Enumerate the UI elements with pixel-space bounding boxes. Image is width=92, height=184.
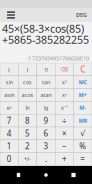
button[interactable]: = xyxy=(74,153,92,165)
button[interactable]: √ xyxy=(74,127,92,140)
staticText: = xyxy=(80,154,85,164)
button[interactable]: 5 xyxy=(18,127,37,140)
staticText: . xyxy=(45,154,47,164)
button[interactable]: − xyxy=(55,140,74,153)
button[interactable]: ) xyxy=(18,63,37,76)
staticText: π xyxy=(44,66,47,73)
button[interactable]: lg xyxy=(37,101,55,114)
staticText: lg xyxy=(44,104,48,111)
button[interactable]: ÷ xyxy=(55,114,74,127)
button[interactable]: C xyxy=(74,63,92,76)
button[interactable]: 1 xyxy=(0,140,18,153)
staticText: ÷ xyxy=(62,115,67,126)
button[interactable]: ( xyxy=(0,63,18,76)
staticText: ln xyxy=(26,104,30,111)
staticText: 0 xyxy=(7,154,12,164)
button[interactable]: 8 xyxy=(18,114,37,127)
button[interactable]: % xyxy=(74,140,92,153)
button[interactable]: M+ xyxy=(74,89,92,101)
staticText: × xyxy=(62,128,67,139)
staticText: √ xyxy=(80,129,85,138)
staticText: tan xyxy=(42,79,50,86)
staticText: + xyxy=(62,154,67,164)
staticText: x⁻¹ xyxy=(61,104,68,111)
staticText: 6 xyxy=(43,128,48,139)
button[interactable]: tan xyxy=(37,76,55,89)
button[interactable]: cos xyxy=(18,76,37,89)
staticText: % xyxy=(79,141,86,151)
button[interactable]: ⌫ xyxy=(55,63,74,76)
staticText: 7 xyxy=(7,115,12,126)
staticText: 9 xyxy=(43,115,48,126)
staticText: atan xyxy=(40,91,51,99)
button[interactable]: asin xyxy=(0,89,18,101)
button[interactable]: π xyxy=(37,63,55,76)
staticText: xʸ xyxy=(62,91,67,99)
staticText: +/- xyxy=(24,155,31,163)
button[interactable]: x² xyxy=(55,76,74,89)
staticText: eˣ xyxy=(7,104,12,111)
staticText: 2 xyxy=(25,141,30,151)
button[interactable]: M- xyxy=(74,101,92,114)
button[interactable]: atan xyxy=(37,89,55,101)
button[interactable]: +/- xyxy=(18,153,37,165)
button[interactable]: 4 xyxy=(0,127,18,140)
staticText: cos xyxy=(23,79,32,86)
button[interactable]: sin xyxy=(0,76,18,89)
staticText: sin xyxy=(6,79,13,86)
staticText: x² xyxy=(62,79,67,86)
staticText: 3 xyxy=(43,141,48,151)
button[interactable]: Home xyxy=(37,168,55,182)
button[interactable]: DEG xyxy=(74,8,89,22)
staticText: 5 xyxy=(25,128,30,139)
button[interactable]: × xyxy=(55,127,74,140)
staticText: ⌫ xyxy=(60,66,68,72)
staticText: MC xyxy=(79,79,87,86)
button[interactable]: Menu xyxy=(3,8,19,22)
button[interactable]: ln xyxy=(18,101,37,114)
staticText: − xyxy=(62,141,67,151)
staticText: acos xyxy=(22,91,34,99)
staticText: 1 xyxy=(7,141,12,151)
staticText: DEG xyxy=(76,11,87,19)
button[interactable]: acos xyxy=(18,89,37,101)
staticText: C xyxy=(80,64,85,75)
button[interactable]: + xyxy=(55,153,74,165)
staticText: +5865-385282255 xyxy=(2,32,89,47)
button[interactable]: Recents xyxy=(64,168,82,182)
staticText: 4 xyxy=(7,128,12,139)
staticText: -1.7337434951766026E10 xyxy=(26,55,89,62)
button[interactable]: 7 xyxy=(0,114,18,127)
button[interactable]: MR xyxy=(74,114,92,127)
staticText: 45×(58-3×cos(85) xyxy=(2,21,84,36)
button[interactable]: 9 xyxy=(37,114,55,127)
staticText: ( xyxy=(8,66,10,73)
button[interactable]: MC xyxy=(74,76,92,89)
button[interactable]: 0 xyxy=(0,153,18,165)
staticText: asin xyxy=(4,91,14,99)
staticText: M+ xyxy=(79,91,87,99)
staticText: ) xyxy=(27,66,29,73)
button[interactable]: . xyxy=(37,153,55,165)
button[interactable]: xʸ xyxy=(55,89,74,101)
button[interactable]: x⁻¹ xyxy=(55,101,74,114)
button[interactable]: 3 xyxy=(37,140,55,153)
button[interactable]: 2 xyxy=(18,140,37,153)
button[interactable]: 6 xyxy=(37,127,55,140)
button[interactable]: eˣ xyxy=(0,101,18,114)
staticText: MR xyxy=(79,117,87,124)
staticText: M- xyxy=(79,104,86,111)
button[interactable]: Back xyxy=(9,168,27,182)
staticText: 8 xyxy=(25,115,30,126)
